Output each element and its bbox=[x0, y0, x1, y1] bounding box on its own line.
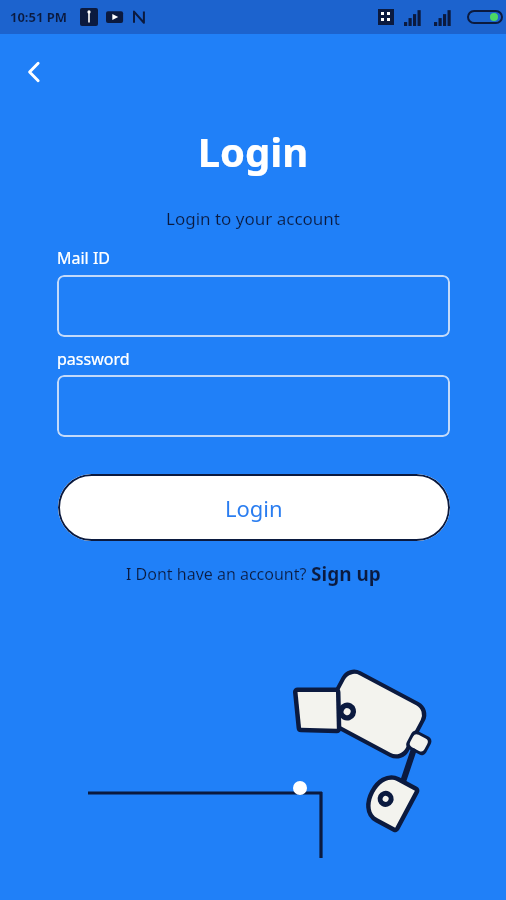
button[interactable]: Back bbox=[12, 50, 56, 94]
staticText: Sign up bbox=[311, 561, 381, 587]
staticText: Login bbox=[225, 493, 283, 523]
staticText: Login bbox=[0, 124, 506, 178]
button[interactable]: Mail ID field bbox=[57, 275, 450, 337]
button[interactable]: Login bbox=[58, 474, 450, 541]
staticText: Login to your account bbox=[0, 207, 506, 230]
staticText: I Dont have an account? bbox=[126, 563, 311, 585]
staticText: password bbox=[57, 348, 130, 370]
staticText: 10:51 PM bbox=[10, 8, 68, 26]
button[interactable]: password field bbox=[57, 375, 450, 437]
staticText: Mail ID bbox=[57, 247, 111, 269]
button[interactable]: Sign up bbox=[311, 561, 381, 587]
